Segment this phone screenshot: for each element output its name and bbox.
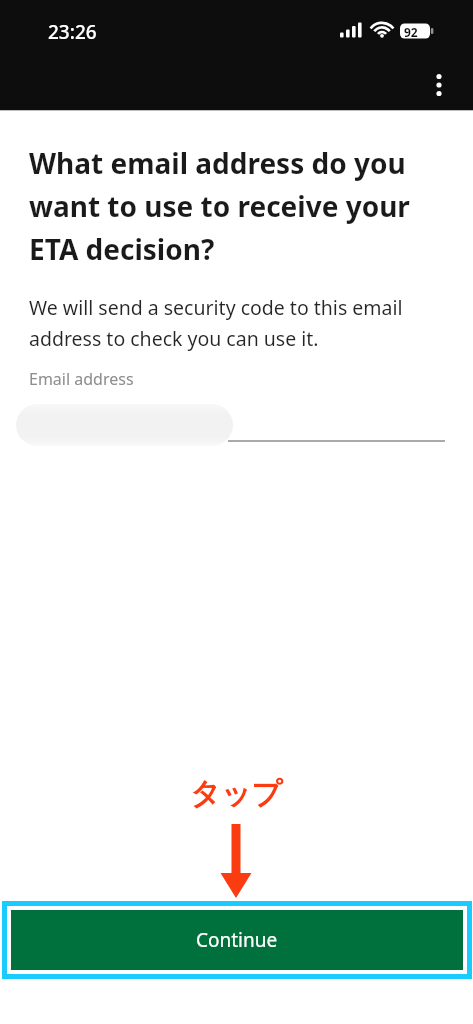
staticText: 23:26	[48, 19, 97, 45]
button[interactable]: More options	[423, 63, 455, 107]
staticText: 92	[404, 24, 418, 40]
staticText: タップ	[186, 775, 286, 813]
staticText: Email address	[29, 368, 134, 390]
staticText: We will send a security code to this ema…	[29, 294, 447, 352]
staticText: Continue	[196, 927, 278, 953]
staticText: What email address do you want to use to…	[29, 144, 447, 268]
button[interactable]: Continue	[11, 910, 463, 970]
